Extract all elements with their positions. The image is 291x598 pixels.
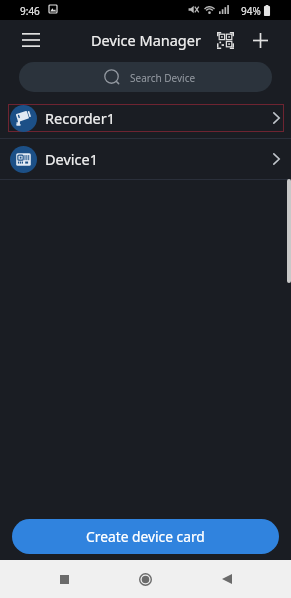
button[interactable]: Recents (44, 560, 84, 598)
button[interactable]: Device1 (0, 139, 291, 179)
button[interactable]: Home (125, 560, 166, 598)
staticText: Device Manager (91, 30, 201, 50)
staticText: Recorder1 (45, 108, 116, 128)
staticText: Search Device (130, 71, 196, 85)
staticText: 9:46 (20, 4, 40, 18)
staticText: Create device card (86, 527, 205, 546)
button[interactable]: Create device card (12, 519, 279, 554)
staticText: 94% (241, 4, 261, 18)
button[interactable]: Open navigation menu (10, 20, 52, 60)
button[interactable]: Add device (239, 20, 281, 60)
button[interactable]: Recorder1 (0, 98, 291, 138)
staticText: Device1 (45, 149, 99, 169)
button[interactable]: Scan QR code (204, 20, 246, 60)
button[interactable]: Back (207, 560, 247, 598)
button[interactable]: Search Device (19, 62, 272, 92)
